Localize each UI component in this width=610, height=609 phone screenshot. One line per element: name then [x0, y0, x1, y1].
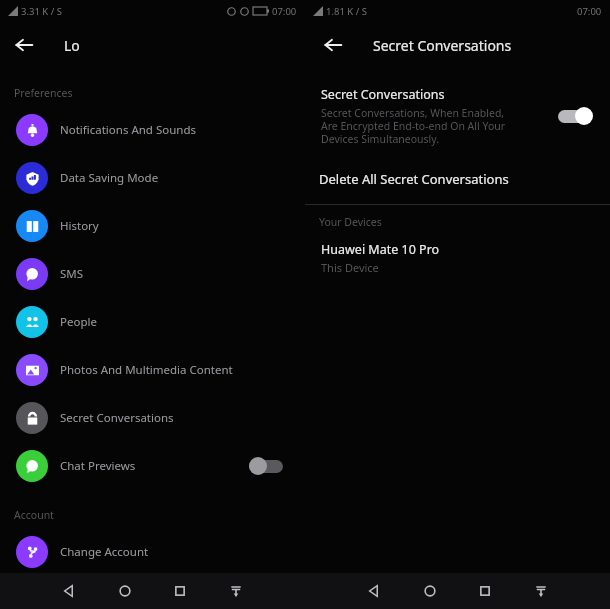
- button[interactable]: Hide navigation bar: [528, 578, 554, 604]
- staticText: History: [60, 218, 99, 234]
- staticText: Photos And Multimedia Content: [60, 362, 233, 378]
- button[interactable]: SMS: [0, 250, 305, 298]
- staticText: 1.81 K / S: [326, 5, 367, 18]
- button[interactable]: Huawei Mate 10 Pro: [305, 241, 610, 275]
- staticText: Secret Conversations: [60, 410, 174, 426]
- button[interactable]: People: [0, 298, 305, 346]
- staticText: Your Devices: [319, 215, 382, 229]
- button[interactable]: Back: [361, 578, 387, 604]
- button[interactable]: Photos And Multimedia Content: [0, 346, 305, 394]
- staticText: People: [60, 314, 97, 330]
- staticText: Huawei Mate 10 Pro: [321, 241, 440, 258]
- staticText: Account: [14, 508, 54, 522]
- button[interactable]: Recents: [167, 578, 193, 604]
- button[interactable]: Secret Conversations: [305, 86, 610, 146]
- staticText: Chat Previews: [60, 458, 136, 474]
- button[interactable]: Back: [317, 29, 349, 61]
- staticText: Preferences: [14, 86, 73, 100]
- staticText: Lo: [64, 36, 80, 55]
- button[interactable]: Change Account: [0, 528, 305, 576]
- button[interactable]: Delete All Secret Conversations: [305, 164, 610, 194]
- staticText: SMS: [60, 266, 84, 282]
- staticText: Change Account: [60, 544, 149, 560]
- staticText: Secret Conversations: [321, 86, 445, 103]
- staticText: Notifications And Sounds: [60, 122, 196, 138]
- button[interactable]: Back: [56, 578, 82, 604]
- button[interactable]: Data Saving Mode: [0, 154, 305, 202]
- staticText: 07:00: [577, 5, 602, 18]
- button[interactable]: Home: [112, 578, 138, 604]
- button[interactable]: History: [0, 202, 305, 250]
- button[interactable]: Chat Previews: [0, 442, 305, 490]
- staticText: 07:00: [272, 5, 297, 18]
- button[interactable]: Hide navigation bar: [223, 578, 249, 604]
- button[interactable]: Back: [8, 29, 40, 61]
- staticText: Delete All Secret Conversations: [319, 170, 509, 188]
- button[interactable]: Secret Conversations: [0, 394, 305, 442]
- button[interactable]: Home: [417, 578, 443, 604]
- staticText: Secret Conversations, When Enabled, Are …: [321, 106, 506, 146]
- button[interactable]: [558, 106, 592, 126]
- button[interactable]: Recents: [472, 578, 498, 604]
- staticText: 3.31 K / S: [21, 5, 62, 18]
- staticText: This Device: [321, 260, 379, 275]
- staticText: Secret Conversations: [373, 36, 512, 55]
- button[interactable]: Notifications And Sounds: [0, 106, 305, 154]
- button[interactable]: [249, 456, 283, 476]
- staticText: Data Saving Mode: [60, 170, 159, 186]
